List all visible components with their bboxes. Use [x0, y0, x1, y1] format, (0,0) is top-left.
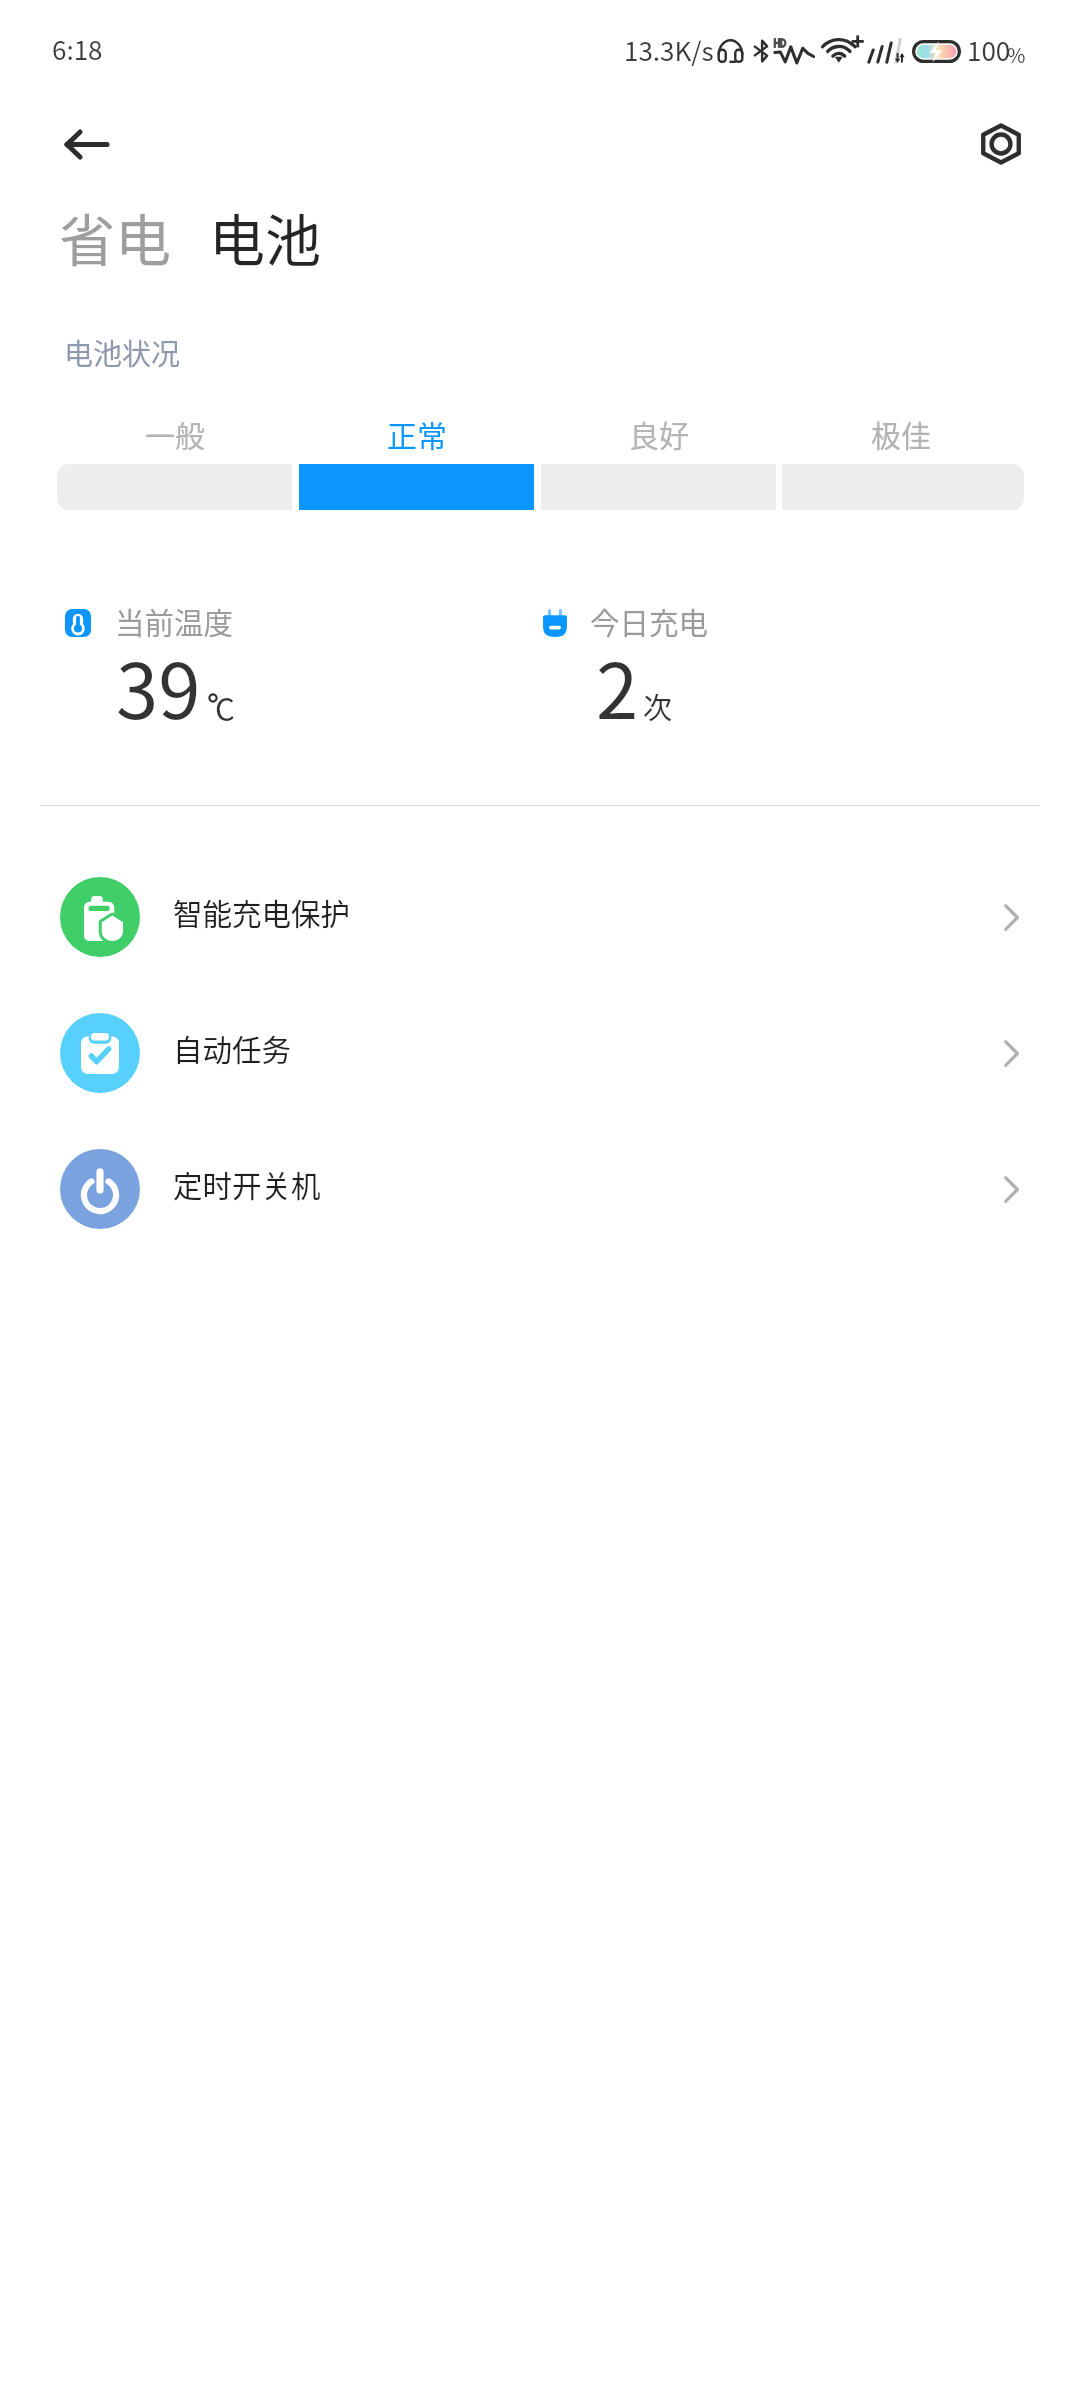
- staticText: 智能充电保护: [173, 891, 351, 934]
- staticText: 39: [116, 631, 201, 741]
- button[interactable]: Settings: [955, 100, 1047, 188]
- staticText: 省电: [59, 196, 171, 277]
- button[interactable]: 智能充电保护: [0, 849, 1080, 985]
- staticText: %: [1007, 40, 1026, 69]
- button[interactable]: 电池: [197, 188, 333, 285]
- button[interactable]: 定时开关机: [0, 1121, 1080, 1257]
- button[interactable]: Back: [40, 100, 132, 188]
- staticText: 当前温度: [115, 600, 234, 643]
- staticText: 自动任务: [173, 1027, 292, 1070]
- button[interactable]: 自动任务: [0, 985, 1080, 1121]
- staticText: C: [215, 685, 235, 730]
- staticText: 良好: [629, 412, 689, 455]
- staticText: 2: [596, 631, 639, 741]
- staticText: 13.3K/s: [624, 31, 714, 69]
- staticText: 电池: [209, 196, 321, 277]
- staticText: 定时开关机: [173, 1163, 321, 1206]
- staticText: 今日充电: [590, 600, 709, 643]
- staticText: 一般: [145, 412, 205, 455]
- staticText: 电池状况: [64, 331, 181, 373]
- staticText: 极佳: [871, 412, 931, 455]
- staticText: 正常: [387, 412, 447, 455]
- button[interactable]: 省电: [47, 188, 183, 285]
- staticText: 6:18: [52, 30, 103, 68]
- staticText: 100: [967, 31, 1011, 69]
- staticText: 次: [643, 685, 673, 727]
